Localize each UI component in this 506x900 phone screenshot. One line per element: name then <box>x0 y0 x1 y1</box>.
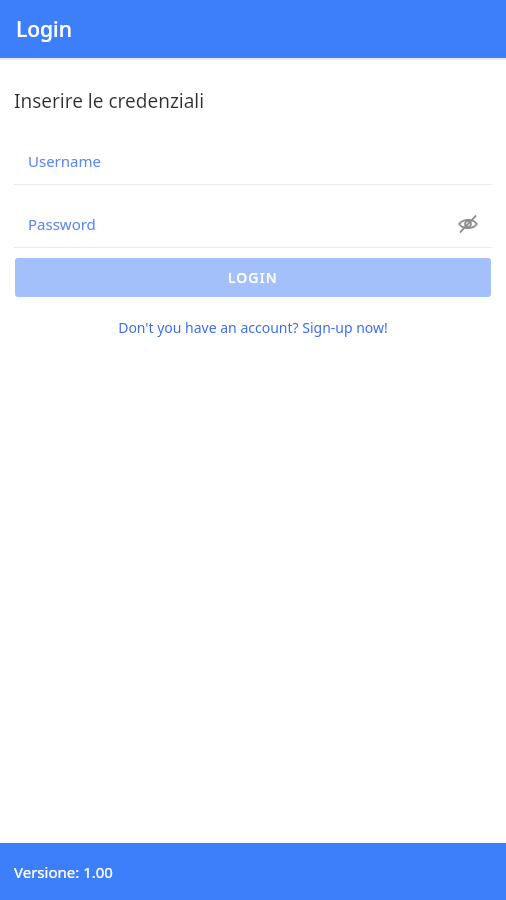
button[interactable]: Username <box>0 138 506 184</box>
button[interactable]: Show password <box>456 212 480 236</box>
staticText: Login <box>16 15 72 44</box>
staticText: Username <box>28 151 101 171</box>
button[interactable]: Password <box>0 201 506 247</box>
staticText: Inserire le credenziali <box>14 88 205 114</box>
staticText: Don't you have an account? Sign-up now! <box>118 318 388 337</box>
button[interactable]: LOGIN <box>15 258 491 297</box>
staticText: Password <box>28 214 96 234</box>
staticText: Versione: 1.00 <box>14 862 113 882</box>
staticText: LOGIN <box>228 268 278 287</box>
button[interactable]: Don't you have an account? Sign-up now! <box>0 318 506 337</box>
